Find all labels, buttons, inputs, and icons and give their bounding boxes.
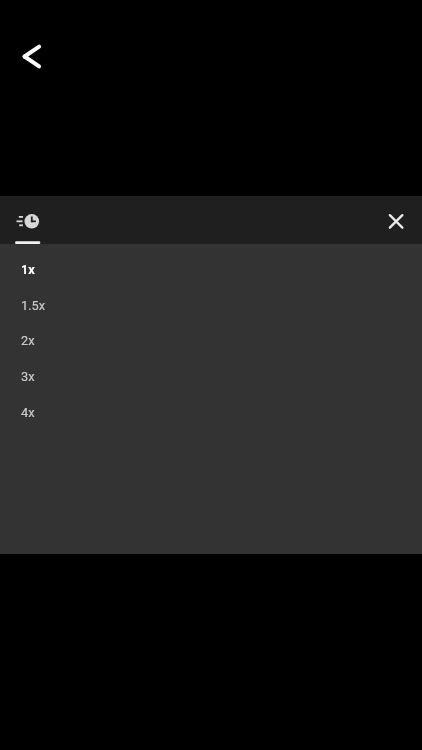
button[interactable]: Playback speed xyxy=(0,196,56,244)
button[interactable]: 1.5x xyxy=(0,287,422,323)
staticText: 1.5x xyxy=(21,298,46,313)
button[interactable]: 1x xyxy=(0,251,422,287)
staticText: 4x xyxy=(21,405,35,420)
button[interactable]: Back xyxy=(8,32,56,80)
button[interactable]: Close xyxy=(374,196,418,240)
button[interactable]: 4x xyxy=(0,394,422,430)
staticText: 3x xyxy=(21,369,35,384)
staticText: 1x xyxy=(21,262,35,277)
staticText: 2x xyxy=(21,333,35,348)
button[interactable]: 2x xyxy=(0,322,422,358)
button[interactable]: 3x xyxy=(0,358,422,394)
